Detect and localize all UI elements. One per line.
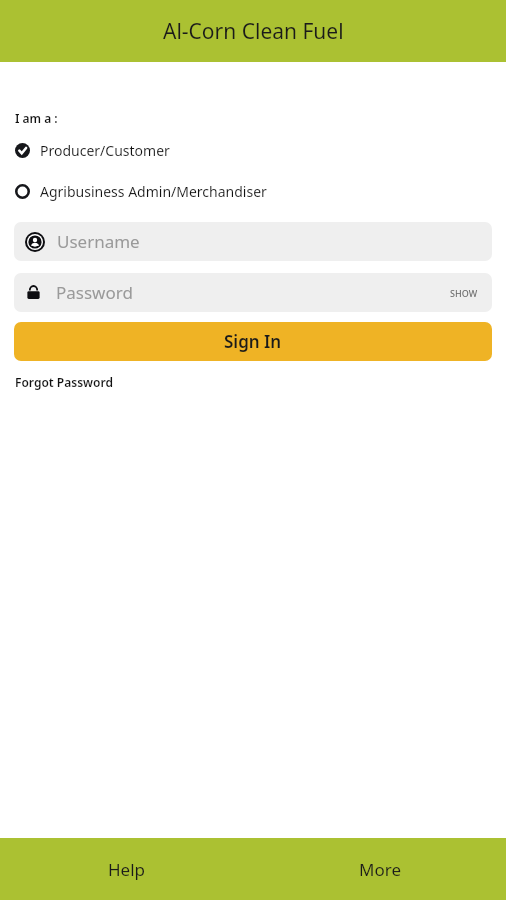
staticText: Forgot Password bbox=[15, 374, 113, 390]
button[interactable]: Forgot Password bbox=[0, 372, 121, 392]
button[interactable]: Sign In bbox=[14, 322, 492, 361]
staticText: Password bbox=[56, 281, 133, 304]
staticText: More bbox=[359, 858, 401, 881]
staticText: Help bbox=[108, 858, 146, 881]
button[interactable]: Agribusiness Admin/Merchandiser bbox=[0, 180, 506, 203]
staticText: I am a : bbox=[15, 110, 58, 126]
button[interactable]: Username bbox=[14, 222, 492, 261]
button[interactable]: Producer/Customer bbox=[0, 139, 506, 162]
button[interactable]: Help bbox=[0, 838, 253, 900]
staticText: Agribusiness Admin/Merchandiser bbox=[40, 182, 267, 201]
button[interactable]: Password bbox=[14, 273, 492, 312]
staticText: Username bbox=[57, 230, 140, 253]
staticText: Al-Corn Clean Fuel bbox=[163, 17, 344, 46]
staticText: Producer/Customer bbox=[40, 141, 170, 160]
staticText: Sign In bbox=[224, 330, 282, 353]
staticText: SHOW bbox=[450, 287, 478, 299]
button[interactable]: SHOW bbox=[436, 281, 492, 305]
button[interactable]: More bbox=[253, 838, 506, 900]
